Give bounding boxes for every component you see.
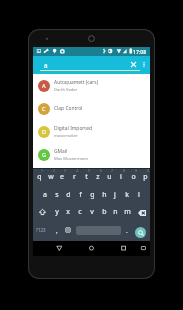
button[interactable]: v xyxy=(86,204,98,219)
staticText: y xyxy=(55,207,59,217)
button[interactable]: D xyxy=(33,120,150,143)
staticText: e xyxy=(60,172,64,182)
button[interactable]: y xyxy=(51,204,63,219)
staticText: s xyxy=(55,190,59,200)
button[interactable]: A xyxy=(33,74,150,97)
button[interactable]: a xyxy=(39,187,51,202)
staticText: . xyxy=(126,226,128,235)
staticText: q xyxy=(37,172,42,182)
staticText: k xyxy=(125,190,129,200)
staticText: p xyxy=(143,172,148,182)
staticText: 3 xyxy=(64,168,66,173)
staticText: 17:08 xyxy=(133,48,147,55)
staticText: musicmaker xyxy=(54,133,78,139)
staticText: a xyxy=(43,190,47,200)
staticText: j xyxy=(114,190,116,200)
button[interactable]: Search xyxy=(135,227,146,238)
button[interactable]: More options xyxy=(138,58,150,70)
button[interactable]: ?123 xyxy=(33,223,49,237)
staticText: h xyxy=(102,190,107,200)
staticText: b xyxy=(102,207,107,217)
staticText: Darth Vader xyxy=(54,87,78,93)
button[interactable]: , xyxy=(51,223,63,237)
staticText: ?123 xyxy=(36,227,46,233)
staticText: Digital Imported xyxy=(54,125,92,132)
staticText: A xyxy=(42,82,46,90)
staticText: 1 xyxy=(41,168,43,173)
button[interactable]: Shift xyxy=(33,204,51,219)
button[interactable]: f xyxy=(74,187,86,202)
button[interactable]: m xyxy=(121,204,133,219)
staticText: f xyxy=(79,190,82,200)
staticText: C xyxy=(42,105,46,113)
button[interactable]: Clear search xyxy=(127,58,140,71)
button[interactable]: Backspace xyxy=(133,205,151,220)
button[interactable]: t xyxy=(80,169,92,184)
staticText: Clap Control xyxy=(54,105,83,112)
staticText: G xyxy=(42,151,47,159)
button[interactable]: C xyxy=(33,97,150,120)
button[interactable]: b xyxy=(98,204,110,219)
staticText: o xyxy=(131,172,136,182)
staticText: Max Mustermann xyxy=(54,156,89,162)
staticText: w xyxy=(48,172,54,182)
staticText: l xyxy=(138,190,140,200)
staticText: D xyxy=(42,128,47,136)
staticText: r xyxy=(73,172,76,182)
staticText: 2 xyxy=(53,168,55,173)
button[interactable]: l xyxy=(133,187,145,202)
button[interactable]: q xyxy=(33,169,45,184)
staticText: i xyxy=(120,172,122,182)
staticText: GMail xyxy=(54,148,68,155)
button[interactable]: u xyxy=(103,169,115,184)
staticText: v xyxy=(90,207,94,217)
button[interactable]: n xyxy=(109,204,121,219)
staticText: n xyxy=(113,207,118,217)
button[interactable]: i xyxy=(115,169,127,184)
button[interactable]: c xyxy=(74,204,86,219)
staticText: 7 xyxy=(111,168,113,173)
button[interactable]: d xyxy=(62,187,74,202)
staticText: 5 xyxy=(88,168,90,173)
staticText: t xyxy=(85,172,88,182)
staticText: , xyxy=(56,226,58,235)
button[interactable]: z xyxy=(92,169,104,184)
staticText: Autoquamett (cars) xyxy=(54,79,99,86)
staticText: a xyxy=(44,61,48,70)
staticText: 8 xyxy=(123,168,125,173)
staticText: u xyxy=(107,172,112,182)
staticText: 9 xyxy=(135,168,137,173)
button[interactable]: . xyxy=(121,223,133,237)
staticText: 6 xyxy=(100,168,102,173)
button[interactable]: g xyxy=(86,187,98,202)
button[interactable]: Change keyboard xyxy=(62,223,74,237)
button[interactable]: s xyxy=(51,187,63,202)
staticText: c xyxy=(78,207,82,217)
button[interactable]: k xyxy=(121,187,133,202)
staticText: 4 xyxy=(76,168,78,173)
staticText: g xyxy=(90,190,95,200)
button[interactable]: p xyxy=(139,169,151,184)
button[interactable]: o xyxy=(127,169,139,184)
button[interactable]: e xyxy=(56,169,68,184)
staticText: z xyxy=(96,172,100,182)
staticText: x xyxy=(66,207,70,217)
button[interactable]: j xyxy=(109,187,121,202)
staticText: d xyxy=(66,190,71,200)
button[interactable]: r xyxy=(68,169,80,184)
staticText: 0 xyxy=(147,168,149,173)
staticText: m xyxy=(124,207,131,217)
button[interactable]: h xyxy=(98,187,110,202)
button[interactable]: G xyxy=(33,143,150,166)
button[interactable]: w xyxy=(45,169,57,184)
button[interactable]: x xyxy=(62,204,74,219)
